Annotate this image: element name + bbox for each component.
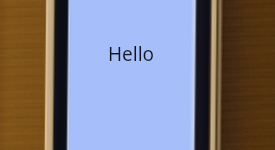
staticText: Hello bbox=[108, 41, 155, 67]
